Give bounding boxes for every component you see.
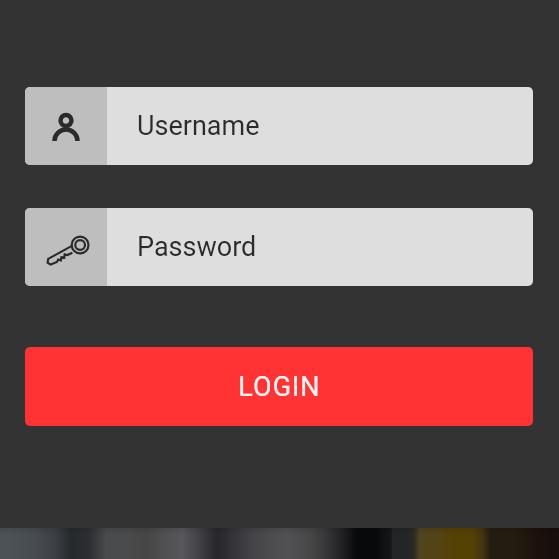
staticText: LOGIN: [238, 371, 321, 403]
staticText: Password: [137, 231, 257, 263]
button[interactable]: LOGIN: [25, 347, 533, 426]
staticText: Username: [137, 110, 260, 142]
button[interactable]: Username field: [25, 87, 533, 165]
button[interactable]: Password field: [25, 208, 533, 286]
